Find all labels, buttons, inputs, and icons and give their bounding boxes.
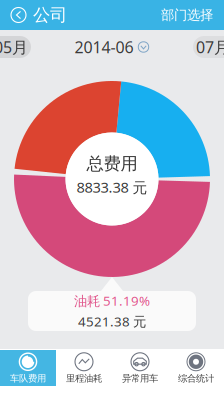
staticText: 异常用车 — [122, 373, 158, 384]
staticText: 4521.38 元 — [78, 312, 146, 330]
button[interactable]: 异常用车 — [112, 350, 168, 386]
staticText: 8833.38 元 — [76, 177, 147, 197]
button[interactable]: 2014-06 — [74, 35, 149, 59]
staticText: 里程油耗 — [66, 373, 102, 384]
button[interactable]: 车队费用 — [0, 350, 56, 386]
staticText: 总费用 — [86, 153, 137, 174]
button[interactable]: 05月 — [0, 36, 31, 58]
staticText: 部门选择 — [161, 7, 213, 23]
staticText: 公司 — [33, 4, 67, 26]
staticText: 2014-06 — [74, 36, 133, 58]
button[interactable]: 部门选择 — [161, 0, 224, 30]
staticText: 05月 — [0, 36, 28, 58]
staticText: 油耗 51.19% — [74, 292, 150, 309]
button[interactable]: 综合统计 — [168, 350, 224, 386]
button[interactable]: 07月 — [193, 36, 224, 58]
staticText: 07月 — [196, 36, 224, 58]
button[interactable]: 公司 — [0, 0, 67, 30]
button[interactable]: 里程油耗 — [56, 350, 112, 386]
staticText: 车队费用 — [10, 373, 46, 384]
staticText: 综合统计 — [178, 373, 214, 384]
